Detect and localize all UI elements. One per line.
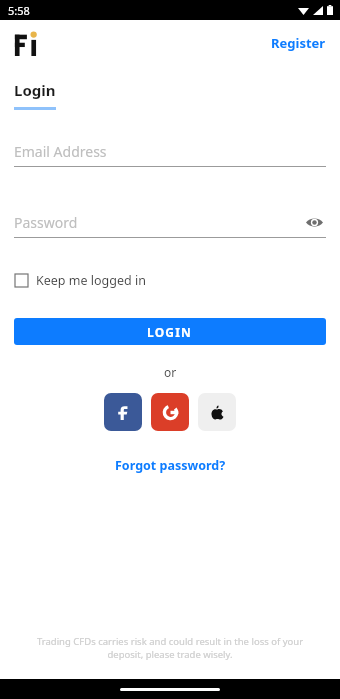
button[interactable]: Forgot password?	[105, 453, 236, 478]
button[interactable]: Keep me logged in	[14, 269, 147, 292]
button[interactable]: Sign in with Apple	[198, 393, 236, 431]
staticText: LOGIN	[147, 324, 193, 340]
staticText: or	[164, 364, 177, 380]
staticText: Register	[271, 34, 326, 52]
staticText: Trading CFDs carries risk and could resu…	[22, 635, 318, 661]
staticText: 5:58	[8, 3, 30, 18]
button[interactable]: Sign in with Google	[151, 393, 189, 431]
staticText: Password	[14, 213, 78, 232]
staticText: Email Address	[14, 142, 107, 161]
staticText: Forgot password?	[115, 457, 226, 474]
staticText: Keep me logged in	[36, 272, 146, 289]
button[interactable]: Sign in with Facebook	[104, 393, 142, 431]
staticText: Login	[14, 80, 56, 100]
button[interactable]: Register	[257, 28, 340, 58]
button[interactable]: Show password	[302, 211, 326, 233]
button[interactable]: LOGIN	[14, 318, 326, 345]
